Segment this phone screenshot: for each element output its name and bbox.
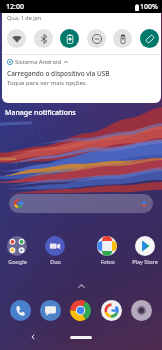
button[interactable]: Do not disturb [87, 29, 106, 48]
button[interactable]: Fotos [88, 236, 126, 265]
button[interactable]: Sistema Android [2, 55, 161, 87]
staticText: Duo [50, 258, 61, 265]
staticText: Qua, 1 de jan [7, 14, 42, 21]
staticText: 12:00 [6, 2, 24, 12]
button[interactable]: Home [70, 336, 92, 339]
staticText: Fotos [100, 258, 115, 265]
button[interactable]: Chrome [70, 300, 91, 321]
staticText: Play Store [132, 258, 158, 265]
staticText: 100% [140, 2, 158, 12]
other: All apps [78, 284, 85, 288]
button[interactable]: Google [0, 236, 36, 265]
button[interactable]: Phone [10, 300, 31, 321]
button[interactable]: Messages [40, 300, 61, 321]
button[interactable]: Bluetooth [34, 29, 53, 48]
button[interactable]: Duo [36, 236, 74, 265]
button[interactable]: Flashlight [113, 29, 132, 48]
staticText: Sistema Android [15, 58, 62, 66]
staticText: Google [8, 258, 27, 265]
button[interactable]: Play Store [126, 236, 162, 265]
button[interactable]: Battery saver [60, 29, 79, 48]
button[interactable]: Google [101, 300, 122, 321]
button[interactable]: Camera [131, 300, 152, 321]
button[interactable]: Manage notifications [0, 106, 162, 119]
staticText: Manage notifications [5, 108, 76, 118]
button[interactable]: Auto rotate [140, 29, 159, 48]
staticText: Toque para ver mais opções. [7, 79, 88, 87]
staticText: Carregando o dispositivo via USB [7, 69, 110, 78]
button[interactable]: Back [30, 334, 36, 340]
other: Voice search [140, 200, 148, 208]
button[interactable]: Voice search [9, 194, 153, 213]
button[interactable]: Wi-Fi [7, 29, 26, 48]
